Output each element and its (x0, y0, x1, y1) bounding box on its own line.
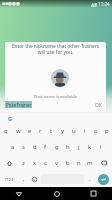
staticText: s (22, 143, 25, 151)
staticText: . (89, 175, 91, 183)
staticText: z (22, 159, 25, 167)
button[interactable]: m (84, 155, 95, 171)
button[interactable]: Emoji (29, 171, 40, 187)
staticText: f (44, 143, 47, 151)
staticText: b (66, 159, 70, 167)
button[interactable]: Google (6, 115, 13, 122)
staticText: h (66, 143, 70, 151)
staticText: q (4, 127, 8, 135)
staticText: w (16, 127, 21, 135)
button[interactable]: j (73, 139, 84, 155)
button[interactable]: c (40, 155, 51, 171)
button[interactable]: d (29, 139, 40, 155)
button[interactable]: o (90, 123, 101, 139)
staticText: j (78, 143, 80, 151)
button[interactable]: g (51, 139, 62, 155)
button[interactable]: t (46, 123, 57, 139)
staticText: t (50, 127, 53, 135)
button[interactable]: b (62, 155, 73, 171)
button[interactable]: . (85, 171, 95, 187)
staticText: r (39, 127, 42, 135)
staticText: n (77, 159, 81, 167)
button[interactable]: ?123 (0, 171, 19, 187)
staticText: , (23, 175, 25, 183)
staticText: e (28, 127, 32, 135)
button[interactable]: l (95, 139, 106, 155)
staticText: ▲▮ 11:24 (91, 1, 110, 7)
staticText: PokeTrainer (6, 102, 32, 108)
staticText: v (55, 159, 59, 167)
staticText: u (72, 127, 76, 135)
button[interactable]: Enter (98, 174, 109, 185)
button[interactable]: e (24, 123, 35, 139)
button[interactable]: Home (38, 187, 75, 200)
button[interactable]: h (62, 139, 73, 155)
staticText: ▪▪●●● (2, 1, 20, 6)
staticText: k (88, 143, 92, 151)
button[interactable]: n (73, 155, 84, 171)
button[interactable]: f (40, 139, 51, 155)
staticText: x (33, 159, 37, 167)
button[interactable]: q (0, 123, 12, 139)
staticText: y (61, 127, 65, 135)
staticText: a (11, 143, 15, 151)
staticText: OK (95, 102, 102, 109)
staticText: Enter the nickname that other Trainers w… (7, 43, 104, 55)
staticText: g (55, 143, 59, 151)
button[interactable]: w (12, 123, 24, 139)
button[interactable]: k (84, 139, 95, 155)
button[interactable]: Back (0, 187, 38, 200)
button[interactable]: i (79, 123, 90, 139)
button[interactable]: x (29, 155, 40, 171)
staticText: d (33, 143, 37, 151)
button[interactable]: z (18, 155, 29, 171)
button[interactable]: , (19, 171, 29, 187)
staticText: G (8, 115, 12, 122)
button[interactable]: Shift (0, 155, 18, 171)
staticText: i (84, 127, 86, 135)
button[interactable]: OK (93, 101, 104, 110)
staticText: m (87, 159, 93, 167)
staticText: o (94, 127, 98, 135)
staticText: l (100, 143, 102, 151)
button[interactable]: a (7, 139, 18, 155)
button[interactable]: PokeTrainer (5, 101, 32, 108)
button[interactable]: Recent apps (75, 187, 112, 200)
button[interactable]: v (51, 155, 62, 171)
staticText: That name is available (5, 94, 106, 100)
button[interactable]: y (57, 123, 68, 139)
button[interactable]: r (35, 123, 46, 139)
button[interactable]: p (101, 123, 112, 139)
staticText: p (105, 127, 109, 135)
button[interactable]: s (18, 139, 29, 155)
button[interactable]: u (68, 123, 79, 139)
staticText: ?123 (5, 177, 14, 182)
staticText: c (44, 159, 47, 167)
button[interactable]: Backspace (95, 155, 112, 171)
